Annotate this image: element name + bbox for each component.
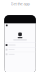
button[interactable] [4, 52, 36, 56]
button[interactable] [4, 47, 36, 52]
staticText: Get the app [10, 1, 29, 6]
button[interactable] [4, 43, 36, 47]
button[interactable]: Close [5, 24, 8, 27]
